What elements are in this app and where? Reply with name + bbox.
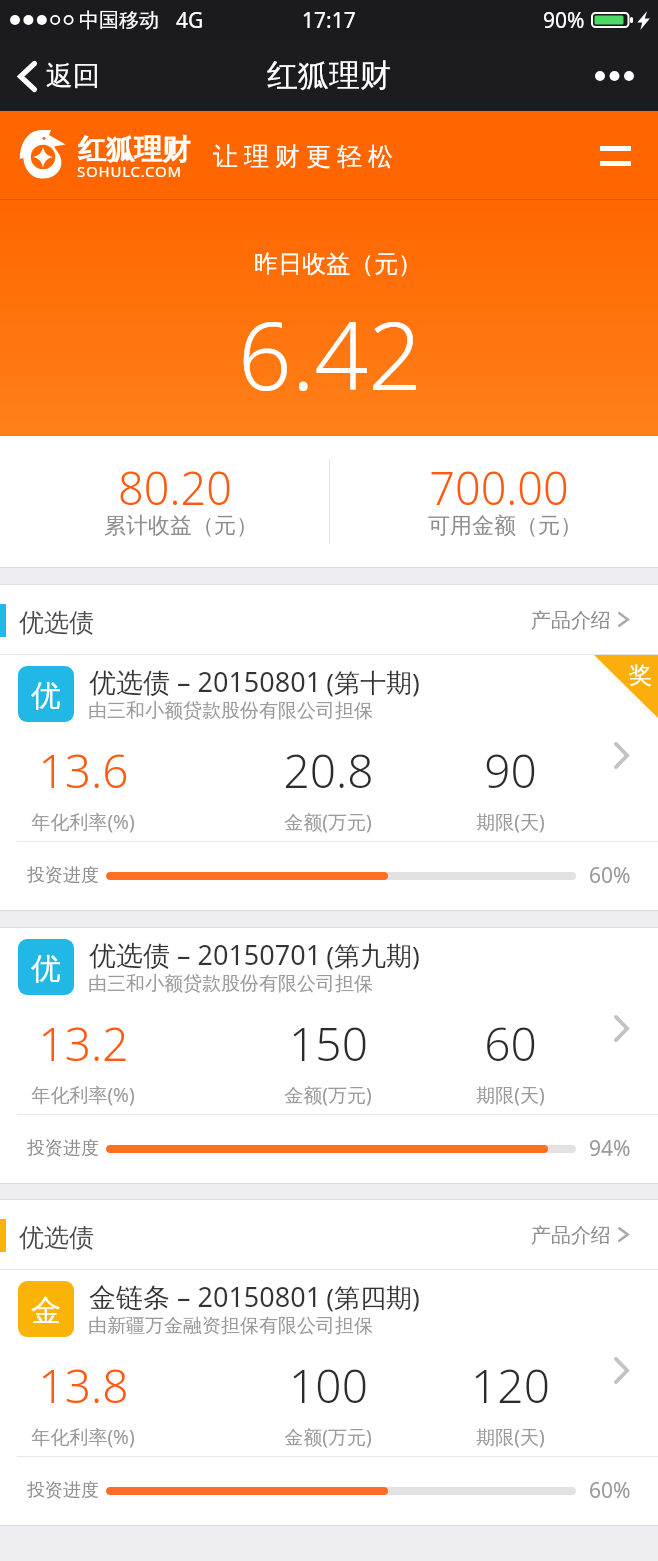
staticText: 优 xyxy=(31,677,61,715)
button[interactable]: Open product detail xyxy=(606,734,637,777)
staticText: 60% xyxy=(589,1476,631,1505)
staticText: SOHULC.COM xyxy=(77,161,182,181)
staticText: 奖 xyxy=(629,661,652,690)
staticText: 金额(万元) xyxy=(284,1082,372,1108)
staticText: 优 xyxy=(31,950,61,988)
staticText: 150 xyxy=(289,1012,368,1075)
button[interactable]: 优选债 xyxy=(0,1200,658,1270)
staticText: 金链条 – 20150801 xyxy=(89,1278,322,1315)
staticText: 17:17 xyxy=(302,6,356,35)
staticText: 优选债 – 20150701 xyxy=(89,936,322,973)
staticText: 年化利率(%) xyxy=(31,1424,135,1450)
staticText: 90% xyxy=(543,6,585,35)
staticText: 优选债 xyxy=(19,607,94,638)
staticText: 13.2 xyxy=(38,1012,129,1075)
staticText: 60% xyxy=(589,861,631,890)
staticText: 投资进度 xyxy=(27,864,99,887)
staticText: 期限(天) xyxy=(476,1424,545,1450)
staticText: 由新疆万金融资担保有限公司担保 xyxy=(88,1314,373,1338)
staticText: 4G xyxy=(176,6,204,35)
staticText: 6.42 xyxy=(238,290,422,418)
staticText: 20.8 xyxy=(283,739,374,802)
staticText: 金额(万元) xyxy=(284,809,372,835)
button[interactable]: 优选债 xyxy=(0,585,658,655)
staticText: 中国移动 xyxy=(79,8,159,33)
staticText: 金 xyxy=(31,1292,61,1330)
staticText: 90 xyxy=(484,739,537,802)
staticText: 80.20 xyxy=(118,457,232,518)
staticText: 累计收益（元） xyxy=(104,512,258,540)
staticText: 期限(天) xyxy=(476,809,545,835)
staticText: (第四期) xyxy=(322,1279,420,1315)
button[interactable]: 80.20 xyxy=(25,436,325,567)
staticText: (第九期) xyxy=(322,937,420,973)
staticText: 13.6 xyxy=(38,739,129,802)
staticText: 120 xyxy=(471,1354,550,1417)
staticText: (第十期) xyxy=(322,664,420,700)
staticText: 13.8 xyxy=(38,1354,129,1417)
button[interactable]: More options xyxy=(585,53,644,99)
staticText: 产品介绍 xyxy=(531,608,611,633)
staticText: 700.00 xyxy=(429,457,569,518)
button[interactable]: 返回 xyxy=(0,49,120,103)
button[interactable]: 优 xyxy=(0,928,658,1183)
staticText: 期限(天) xyxy=(476,1082,545,1108)
staticText: 红狐理财 xyxy=(78,132,190,167)
staticText: 60 xyxy=(484,1012,537,1075)
staticText: 返回 xyxy=(46,59,100,93)
staticText: 100 xyxy=(289,1354,368,1417)
button[interactable]: Menu xyxy=(586,122,645,190)
staticText: 让理财更轻松 xyxy=(210,141,396,172)
staticText: 红狐理财 xyxy=(267,56,391,95)
staticText: 投资进度 xyxy=(27,1479,99,1502)
staticText: 投资进度 xyxy=(27,1137,99,1160)
staticText: 可用金额（元） xyxy=(428,512,582,540)
staticText: 优选债 xyxy=(19,1222,94,1253)
button[interactable]: Open product detail xyxy=(606,1349,637,1392)
staticText: 由三和小额贷款股份有限公司担保 xyxy=(88,699,373,723)
staticText: 94% xyxy=(589,1134,631,1163)
staticText: 年化利率(%) xyxy=(31,1082,135,1108)
button[interactable]: 700.00 xyxy=(349,436,649,567)
staticText: 产品介绍 xyxy=(531,1223,611,1248)
button[interactable]: Open product detail xyxy=(606,1007,637,1050)
button[interactable]: 金 xyxy=(0,1270,658,1525)
staticText: 优选债 – 20150801 xyxy=(89,663,322,700)
staticText: 金额(万元) xyxy=(284,1424,372,1450)
staticText: 由三和小额贷款股份有限公司担保 xyxy=(88,972,373,996)
staticText: 昨日收益（元） xyxy=(254,249,422,279)
staticText: 年化利率(%) xyxy=(31,809,135,835)
button[interactable]: 优 xyxy=(0,655,658,910)
